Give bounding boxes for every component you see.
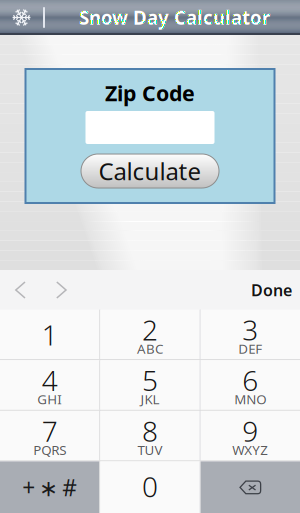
button[interactable]: 1 (0, 310, 99, 359)
button[interactable]: 8 (100, 411, 200, 460)
staticText: + ∗ # (22, 472, 77, 502)
staticText: 2 (142, 311, 158, 348)
staticText: 1 (42, 316, 58, 353)
staticText: Calculate (98, 155, 201, 187)
staticText: WXYZ (232, 441, 268, 459)
staticText: 3 (242, 311, 258, 348)
staticText: TUV (137, 441, 162, 459)
staticText: 9 (242, 412, 258, 449)
staticText: 5 (142, 362, 158, 399)
staticText: MNO (234, 390, 266, 408)
button[interactable]: Delete (201, 461, 300, 513)
button[interactable]: 3 (201, 310, 300, 359)
staticText: PQRS (33, 441, 66, 459)
button[interactable]: 9 (201, 411, 300, 460)
staticText: JKL (140, 390, 159, 408)
button[interactable]: 2 (100, 310, 200, 359)
button[interactable]: 4 (0, 360, 99, 410)
button[interactable]: Snow (12, 1, 31, 34)
button[interactable]: Previous field (5, 270, 36, 310)
button[interactable]: 0 (100, 461, 200, 513)
staticText: Zip Code (105, 79, 195, 107)
staticText: Snow Day Calculator (79, 5, 270, 30)
staticText: 0 (142, 468, 158, 505)
staticText: 6 (242, 362, 258, 399)
button[interactable]: 5 (100, 360, 200, 410)
staticText: DEF (238, 340, 262, 357)
staticText: GHI (37, 390, 62, 408)
button[interactable]: Next field (46, 270, 77, 310)
button[interactable]: 7 (0, 411, 99, 460)
staticText: 7 (42, 412, 58, 449)
button[interactable]: 6 (201, 360, 300, 410)
button[interactable]: Done (243, 270, 300, 310)
staticText: 4 (42, 362, 58, 399)
staticText: ABC (137, 340, 163, 357)
staticText: 8 (142, 412, 158, 449)
button[interactable]: Calculate (81, 154, 219, 188)
staticText: Done (251, 279, 292, 301)
button[interactable]: Symbols (0, 461, 99, 513)
